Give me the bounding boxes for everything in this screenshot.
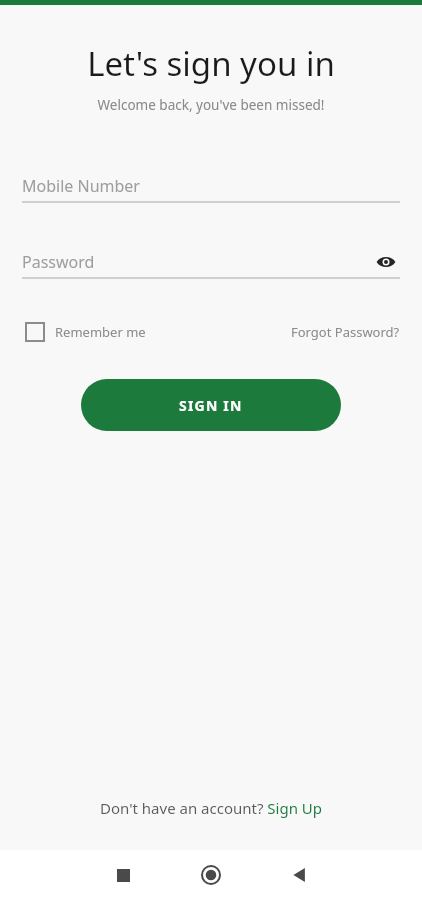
button[interactable]: Password xyxy=(22,247,372,277)
staticText: Remember me xyxy=(55,323,146,341)
staticText: Welcome back, you've been missed! xyxy=(0,96,422,114)
staticText: Don't have an account? Sign Up xyxy=(100,798,323,818)
button[interactable]: Back xyxy=(276,852,322,898)
button[interactable]: Don't have an account? Sign Up xyxy=(0,798,422,818)
staticText: Forgot Password? xyxy=(291,323,400,341)
button[interactable]: Home xyxy=(188,852,234,898)
button[interactable]: Recent apps xyxy=(100,852,146,898)
staticText: Password xyxy=(22,251,95,273)
button[interactable]: Show password xyxy=(372,248,400,276)
staticText: Let's sign you in xyxy=(0,41,422,86)
button[interactable]: SIGN IN xyxy=(81,379,341,431)
button[interactable]: Forgot Password? xyxy=(291,323,400,341)
staticText: Mobile Number xyxy=(22,175,140,197)
staticText: SIGN IN xyxy=(179,396,243,415)
button[interactable]: Mobile Number xyxy=(22,171,400,201)
button[interactable]: Remember me xyxy=(22,319,146,345)
